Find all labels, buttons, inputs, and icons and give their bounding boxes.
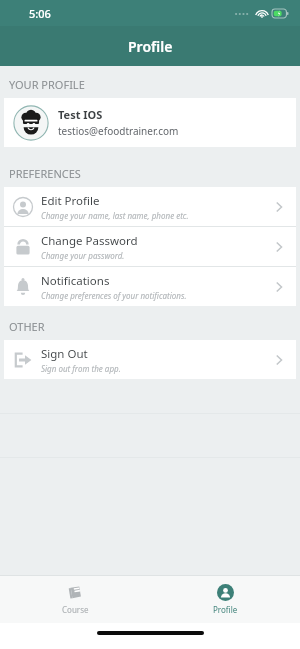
staticText: Change Password — [41, 233, 138, 249]
staticText: Course — [62, 604, 89, 615]
staticText: Change preferences of your notifications… — [41, 290, 187, 301]
staticText: Test IOS — [58, 107, 103, 122]
staticText: Sign Out — [41, 346, 88, 362]
button[interactable]: Profile — [197, 581, 254, 618]
staticText: PREFERENCES — [9, 166, 81, 181]
staticText: YOUR PROFILE — [9, 77, 85, 92]
staticText: Change your password. — [41, 250, 125, 261]
staticText: Notifications — [41, 273, 110, 289]
staticText: Profile — [213, 604, 238, 615]
button[interactable]: Test IOS — [4, 98, 296, 147]
staticText: Sign out from the app. — [41, 363, 121, 374]
staticText: Edit Profile — [41, 193, 100, 209]
button[interactable]: Notifications — [4, 267, 296, 306]
staticText: 5:06 — [29, 6, 51, 21]
staticText: OTHER — [9, 319, 45, 334]
staticText: Profile — [128, 37, 173, 56]
staticText: testios@efoodtrainer.com — [58, 124, 179, 138]
button[interactable]: Sign Out — [4, 340, 296, 379]
staticText: Change your name, last name, phone etc. — [41, 210, 189, 221]
button[interactable]: Change Password — [4, 227, 296, 266]
button[interactable]: Course — [46, 581, 105, 618]
button[interactable]: Edit Profile — [4, 187, 296, 226]
